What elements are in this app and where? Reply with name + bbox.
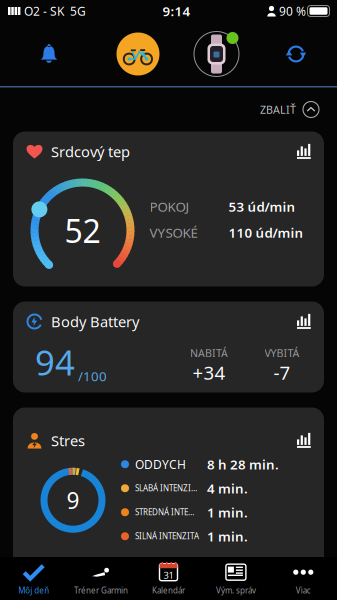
staticText: 8 h 28 min. (207, 455, 279, 473)
staticText: /100 (75, 367, 107, 385)
staticText: ODDYCH (135, 456, 186, 472)
staticText: 9 (66, 485, 79, 515)
button[interactable]: Cycling activity (113, 29, 163, 79)
staticText: Srdcový tep (43, 142, 130, 161)
staticText: 53 úd/min (228, 198, 295, 215)
staticText: Tréner Garmin (74, 585, 128, 596)
staticText: 1 min. (207, 527, 248, 545)
staticText: 5G (64, 3, 86, 19)
button[interactable]: Viac (270, 557, 337, 600)
staticText: POKOJ (149, 198, 189, 215)
button[interactable]: Tréner Garmin (67, 557, 135, 600)
staticText: 110 úd/min (228, 224, 303, 241)
staticText: 9:14 (162, 2, 190, 20)
staticText: SLABÁ INTENZI… (135, 483, 197, 493)
button[interactable]: Môj deň (0, 557, 67, 600)
staticText: SILNÁ INTENZITA (135, 531, 199, 541)
staticText: -7 (273, 360, 290, 385)
staticText: O2 - SK (21, 3, 64, 19)
button[interactable]: Notifications (24, 29, 74, 79)
button[interactable]: ZBALIŤ (256, 95, 323, 123)
staticText: 52 (64, 209, 100, 252)
staticText: 1 min. (207, 503, 248, 521)
staticText: VYBITÁ (264, 346, 299, 360)
staticText: Vým. správ (216, 585, 256, 596)
staticText: 31 (163, 569, 173, 581)
button[interactable]: Vým. správ (202, 557, 270, 600)
staticText: STREDNÁ INTE… (135, 507, 194, 517)
staticText: Môj deň (18, 585, 49, 596)
button[interactable]: Watch device (191, 29, 241, 79)
button[interactable]: Sync (271, 29, 321, 79)
staticText: VYSOKÉ (149, 224, 197, 241)
button[interactable]: 31 (135, 557, 202, 600)
staticText: +34 (192, 360, 225, 385)
staticText: 90 % (276, 3, 306, 19)
staticText: 4 min. (207, 479, 248, 497)
staticText: Kalendár (152, 585, 185, 596)
staticText: NABITÁ (190, 346, 228, 360)
staticText: 94 (35, 339, 75, 385)
staticText: Body Battery (43, 312, 139, 331)
staticText: ZBALIŤ (260, 102, 296, 117)
staticText: Stres (43, 431, 85, 450)
staticText: Viac (296, 585, 311, 596)
